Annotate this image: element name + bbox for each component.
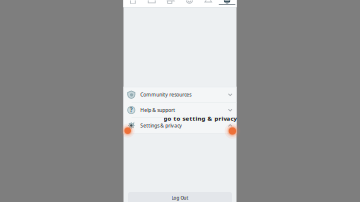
button[interactable]: Menu [218,0,236,7]
button[interactable]: Marketplace [161,0,180,7]
button[interactable]: Groups [180,0,199,7]
staticText: go to setting & privacy [163,114,236,122]
staticText: Log Out [171,195,188,201]
staticText: Help & support [140,107,175,113]
button[interactable]: Home [123,0,142,7]
button[interactable]: Log Out [128,192,232,202]
button[interactable]: Community resources [123,87,236,102]
staticText: ? [130,106,133,114]
button[interactable]: Notifications [199,0,218,7]
button[interactable]: Settings & privacy [123,118,236,133]
staticText: Settings & privacy [140,122,182,129]
button[interactable]: Video [142,0,161,7]
staticText: Community resources [140,91,191,98]
button[interactable]: ? [123,103,236,118]
